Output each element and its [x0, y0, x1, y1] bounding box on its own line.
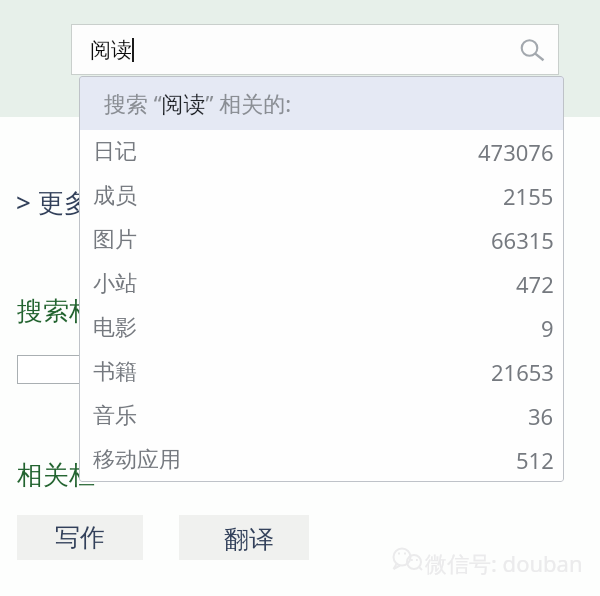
button[interactable]: 翻译: [179, 515, 309, 560]
staticText: 微信号: douban: [425, 548, 583, 578]
staticText: 音乐: [93, 402, 137, 430]
button[interactable]: 日记: [79, 130, 564, 174]
button[interactable]: 音乐: [79, 394, 564, 438]
staticText: 成员: [93, 182, 137, 210]
button[interactable]: 书籍: [79, 350, 564, 394]
button[interactable]: 电影: [79, 306, 564, 350]
staticText: 472: [516, 269, 554, 299]
staticText: 36: [528, 401, 554, 431]
staticText: 电影: [93, 314, 137, 342]
staticText: 日记: [93, 138, 137, 166]
button[interactable]: 阅读: [71, 24, 559, 75]
button[interactable]: 成员: [79, 174, 564, 218]
button[interactable]: 小站: [79, 262, 564, 306]
staticText: 9: [541, 313, 554, 343]
button[interactable]: 写作: [17, 515, 143, 560]
other: WeChat: [391, 546, 427, 572]
button[interactable]: 移动应用: [79, 438, 564, 482]
staticText: 阅读: [90, 37, 132, 63]
staticText: 写作: [55, 522, 105, 553]
staticText: 移动应用: [93, 446, 181, 474]
button[interactable]: > 更多: [16, 184, 90, 220]
staticText: 图片: [93, 226, 137, 254]
staticText: 搜索 “阅读” 相关的:: [104, 88, 292, 118]
staticText: 21653: [491, 357, 554, 387]
button[interactable]: [17, 355, 147, 384]
staticText: 66315: [491, 225, 554, 255]
button[interactable]: 图片: [79, 218, 564, 262]
button[interactable]: Search: [513, 32, 549, 68]
staticText: 搜索栏: [17, 295, 95, 328]
staticText: 512: [516, 445, 554, 475]
staticText: 小站: [93, 270, 137, 298]
staticText: 473076: [478, 137, 554, 167]
staticText: 书籍: [93, 358, 137, 386]
staticText: 翻译: [224, 524, 274, 555]
staticText: 相关栏: [17, 459, 95, 492]
staticText: 2155: [503, 181, 554, 211]
